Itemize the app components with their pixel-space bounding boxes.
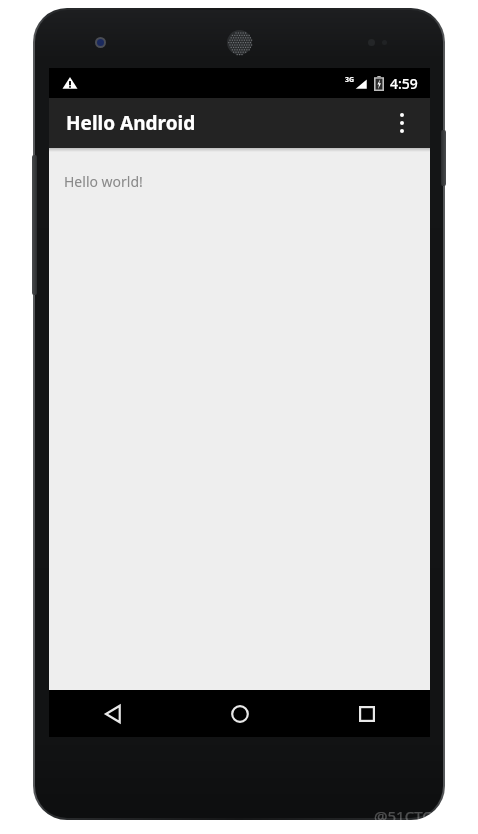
- button[interactable]: Recent apps: [303, 690, 430, 737]
- button[interactable]: Back: [49, 690, 176, 737]
- staticText: 3G: [345, 75, 355, 85]
- button[interactable]: Home: [176, 690, 303, 737]
- staticText: Hello world!: [64, 172, 143, 191]
- staticText: Hello Android: [66, 110, 196, 136]
- staticText: 4:59: [390, 74, 418, 93]
- button[interactable]: More options: [380, 101, 424, 145]
- staticText: @51CTO博客: [374, 806, 464, 826]
